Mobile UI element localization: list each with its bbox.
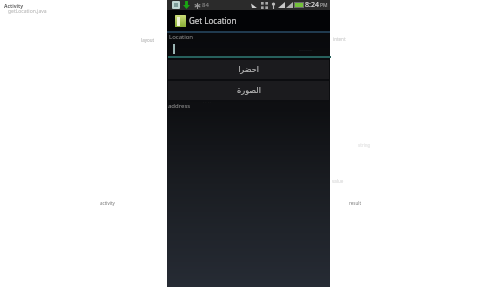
staticText: Get Location bbox=[189, 15, 237, 26]
staticText: Activity bbox=[4, 3, 24, 10]
staticText: intent bbox=[333, 36, 346, 42]
staticText: string bbox=[358, 142, 371, 148]
staticText: احضرا bbox=[238, 65, 259, 74]
staticText: PM bbox=[320, 2, 328, 9]
staticText: ______ bbox=[299, 45, 313, 52]
button[interactable]: الصورة bbox=[168, 81, 329, 100]
staticText: - - - - bbox=[203, 99, 212, 104]
staticText: value bbox=[332, 178, 344, 184]
staticText: الصورة bbox=[237, 86, 261, 95]
staticText: activity bbox=[100, 200, 115, 206]
staticText: layout bbox=[141, 37, 155, 43]
staticText: getLocation.java bbox=[8, 8, 47, 15]
button[interactable]: احضرا bbox=[168, 60, 329, 79]
staticText: Location bbox=[169, 33, 194, 41]
staticText: 8:24 bbox=[305, 0, 319, 10]
staticText: result bbox=[349, 200, 362, 206]
staticText: 84 bbox=[202, 1, 209, 9]
staticText: address bbox=[168, 102, 191, 110]
